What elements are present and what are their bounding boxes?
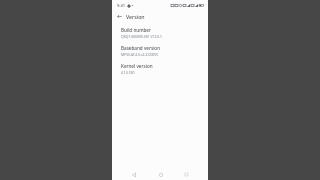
- button[interactable]: Kernel version: [112, 60, 208, 78]
- button[interactable]: Home: [155, 169, 166, 180]
- staticText: Kernel version: [121, 63, 153, 69]
- button[interactable]: Recent apps: [181, 169, 192, 180]
- staticText: 4.14.180: [121, 70, 135, 75]
- staticText: QKQ1.000000.001 V12.0.1: [121, 34, 163, 39]
- staticText: Baseband version: [121, 45, 161, 51]
- staticText: Build number: [121, 27, 151, 33]
- button[interactable]: Back: [128, 169, 139, 180]
- button[interactable]: Back: [115, 12, 124, 21]
- button[interactable]: Build number: [112, 24, 208, 42]
- staticText: 9:41: [117, 3, 125, 8]
- button[interactable]: Baseband version: [112, 42, 208, 60]
- staticText: MPSS.AT.4.0.c2.2-00055: [121, 52, 159, 57]
- staticText: Version: [126, 13, 145, 20]
